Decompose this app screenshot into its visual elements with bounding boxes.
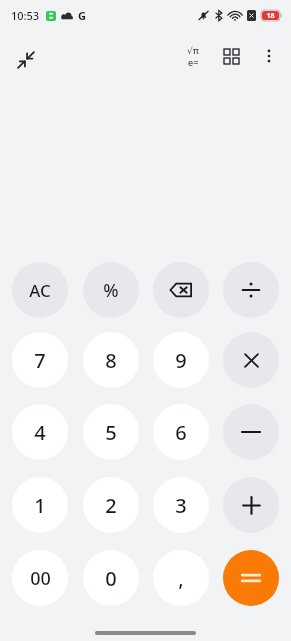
staticText: 1 <box>34 492 46 519</box>
button[interactable]: Divide <box>223 262 279 318</box>
button[interactable]: 9 <box>153 332 209 388</box>
button[interactable]: 5 <box>83 404 139 460</box>
button[interactable]: Plus <box>223 477 279 533</box>
button[interactable]: Collapse <box>6 40 46 80</box>
button[interactable]: Equals <box>223 550 279 606</box>
button[interactable]: 6 <box>153 404 209 460</box>
button[interactable]: , <box>153 550 209 606</box>
staticText: , <box>178 565 184 592</box>
button[interactable]: 0 <box>83 550 139 606</box>
button[interactable]: More options <box>251 38 287 74</box>
button[interactable]: 8 <box>83 332 139 388</box>
button[interactable]: AC <box>12 262 68 318</box>
staticText: 9 <box>175 347 187 374</box>
staticText: 5 <box>105 419 117 446</box>
button[interactable]: 1 <box>12 477 68 533</box>
staticText: √π <box>187 44 199 56</box>
staticText: 18 <box>266 11 275 21</box>
button[interactable]: 4 <box>12 404 68 460</box>
button[interactable]: 3 <box>153 477 209 533</box>
button[interactable]: Minus <box>223 404 279 460</box>
staticText: G <box>78 8 86 23</box>
staticText: 4 <box>34 419 46 446</box>
button[interactable]: Multiply <box>223 332 279 388</box>
button[interactable]: % <box>83 262 139 318</box>
button[interactable]: 2 <box>83 477 139 533</box>
staticText: e= <box>188 56 199 68</box>
staticText: 8 <box>105 347 117 374</box>
staticText: 00 <box>30 566 51 591</box>
button[interactable]: Scientific functions <box>175 38 211 74</box>
staticText: 3 <box>175 492 187 519</box>
button[interactable]: 00 <box>12 550 68 606</box>
staticText: 7 <box>34 347 46 374</box>
staticText: 0 <box>105 565 117 592</box>
staticText: AC <box>29 279 51 302</box>
button[interactable]: 7 <box>12 332 68 388</box>
staticText: 2 <box>105 492 117 519</box>
button[interactable]: Backspace <box>153 262 209 318</box>
staticText: 10:53 <box>11 8 40 23</box>
staticText: % <box>103 278 119 303</box>
button[interactable]: Layout <box>213 38 249 74</box>
staticText: 6 <box>175 419 187 446</box>
